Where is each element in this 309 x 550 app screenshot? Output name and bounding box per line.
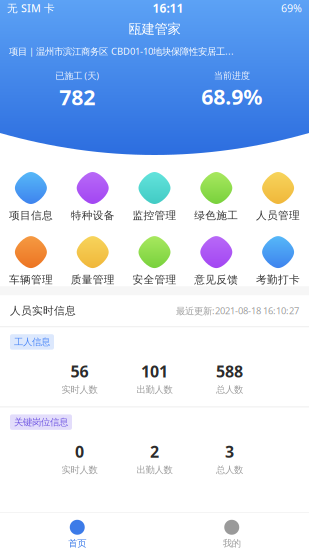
staticText: 2 — [150, 441, 159, 462]
button[interactable]: 我的 — [154, 520, 309, 549]
staticText: 0 — [75, 441, 84, 462]
staticText: 出勤人数 — [136, 384, 172, 395]
staticText: 特种设备 — [71, 209, 115, 222]
staticText: 监控管理 — [132, 209, 176, 222]
staticText: 关键岗位信息 — [14, 416, 68, 428]
staticText: 68.9% — [201, 82, 262, 111]
staticText: 工人信息 — [14, 336, 50, 348]
staticText: 绿色施工 — [194, 209, 238, 222]
staticText: 首页 — [68, 538, 86, 549]
button[interactable]: 人员管理 — [247, 172, 309, 222]
staticText: 人员实时信息 — [10, 304, 76, 317]
staticText: 考勤打卡 — [256, 273, 300, 286]
button[interactable]: 安全管理 — [124, 236, 185, 286]
staticText: 质量管理 — [71, 273, 115, 286]
button[interactable]: 意见反馈 — [185, 236, 247, 286]
staticText: 我的 — [223, 538, 241, 549]
staticText: 瓯建管家 — [128, 21, 180, 37]
staticText: 安全管理 — [132, 273, 176, 286]
button[interactable]: 考勤打卡 — [247, 236, 309, 286]
staticText: 实时人数 — [61, 464, 97, 476]
staticText: 当前进度 — [214, 70, 250, 81]
staticText: 3 — [225, 441, 234, 462]
staticText: 出勤人数 — [136, 464, 172, 476]
staticText: 101 — [141, 361, 168, 382]
button[interactable]: 监控管理 — [124, 172, 185, 222]
staticText: 56 — [70, 361, 88, 382]
staticText: 已施工 (天) — [55, 69, 99, 82]
button[interactable]: 质量管理 — [62, 236, 124, 286]
button[interactable]: 车辆管理 — [0, 236, 62, 286]
staticText: 782 — [59, 83, 95, 111]
staticText: 项目 | 温州市滨江商务区 CBD01-10地块保障性安居工... — [9, 45, 234, 57]
staticText: 16:11 — [152, 0, 183, 16]
button[interactable]: 绿色施工 — [185, 172, 247, 222]
staticText: 人员管理 — [256, 209, 300, 222]
staticText: 588 — [216, 361, 243, 382]
staticText: 无 SIM 卡 — [7, 1, 55, 15]
staticText: 总人数 — [216, 384, 243, 395]
staticText: 意见反馈 — [194, 273, 238, 286]
button[interactable]: 项目信息 — [0, 172, 62, 222]
staticText: 最近更新:2021-08-18 16:10:27 — [176, 304, 299, 317]
button[interactable]: 首页 — [0, 520, 154, 549]
staticText: 实时人数 — [61, 384, 97, 395]
staticText: 项目信息 — [9, 209, 53, 222]
staticText: 总人数 — [216, 464, 243, 476]
staticText: 车辆管理 — [9, 273, 53, 286]
staticText: 69% — [281, 1, 302, 15]
button[interactable]: 特种设备 — [62, 172, 124, 222]
